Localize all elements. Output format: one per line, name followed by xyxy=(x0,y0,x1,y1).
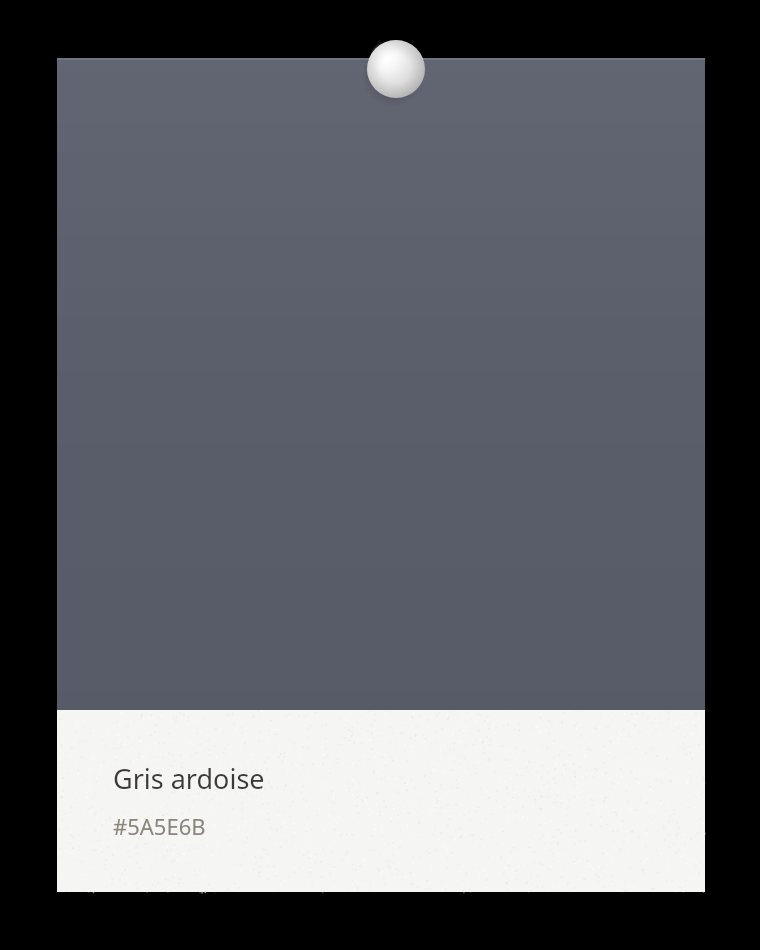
button[interactable]: Gris ardoise xyxy=(57,58,705,892)
staticText: Gris ardoise xyxy=(113,760,265,797)
button[interactable]: Pin xyxy=(367,40,425,98)
staticText: #5A5E6B xyxy=(113,811,206,841)
